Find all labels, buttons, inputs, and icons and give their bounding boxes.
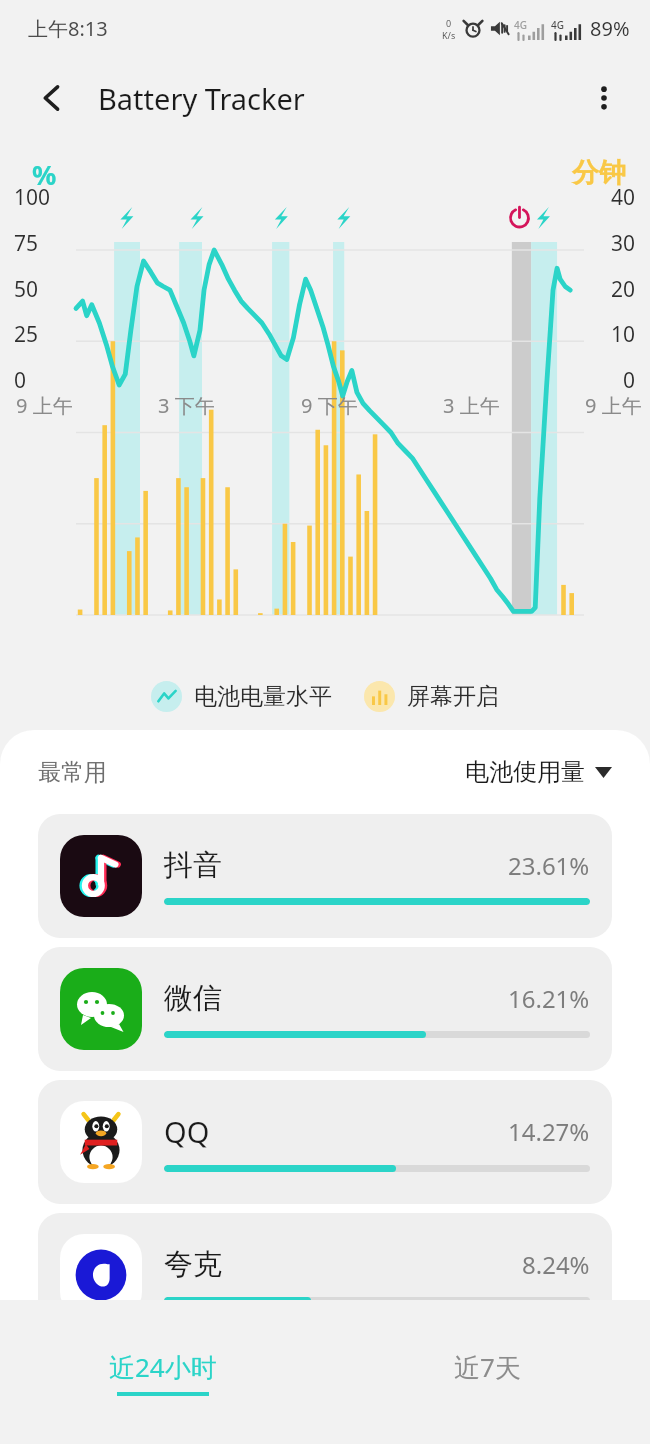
staticText: 3 上午	[443, 392, 500, 419]
staticText: 电池使用量	[465, 757, 585, 787]
staticText: 50	[14, 275, 39, 304]
staticText: 9 上午	[16, 392, 73, 419]
staticText: 89%	[590, 15, 630, 42]
staticText: 25	[14, 320, 39, 349]
button[interactable]: 电池使用量	[465, 757, 612, 787]
button[interactable]: 电池电量水平	[147, 681, 336, 712]
staticText: 4G	[551, 18, 564, 32]
staticText: 电池电量水平	[194, 682, 332, 711]
staticText: 近7天	[454, 1349, 521, 1385]
staticText: 抖音	[164, 847, 222, 884]
staticText: 100	[14, 183, 51, 212]
staticText: 近24小时	[109, 1349, 217, 1385]
staticText: 0	[14, 366, 27, 395]
button[interactable]: 夸克	[38, 1213, 612, 1337]
button[interactable]: Back	[26, 72, 78, 124]
staticText: 9 上午	[585, 392, 642, 419]
staticText: 4G	[514, 18, 527, 32]
staticText: Battery Tracker	[98, 79, 305, 118]
staticText: QQ	[164, 1112, 210, 1151]
button[interactable]: QQ	[38, 1080, 612, 1204]
button[interactable]	[38, 1346, 612, 1444]
staticText: 9 下午	[301, 392, 358, 419]
staticText: 微信	[164, 980, 222, 1017]
button[interactable]: 抖音	[38, 814, 612, 938]
staticText: 分钟	[572, 156, 626, 190]
staticText: 40	[611, 183, 636, 212]
staticText: 30	[611, 229, 636, 258]
button[interactable]: 近7天	[325, 1300, 650, 1444]
staticText: K/s	[442, 29, 456, 41]
button[interactable]: 微信	[38, 947, 612, 1071]
staticText: 0	[623, 366, 636, 395]
staticText: 屏幕开启	[407, 682, 499, 711]
staticText: 20	[611, 275, 636, 304]
staticText: 0	[446, 17, 452, 29]
staticText: 3 下午	[158, 392, 215, 419]
staticText: 14.27%	[508, 1115, 590, 1148]
button[interactable]: 近24小时	[0, 1300, 325, 1444]
staticText: 最常用	[38, 758, 107, 787]
staticText: 75	[14, 229, 39, 258]
staticText: %	[32, 156, 57, 193]
staticText: 上午8:13	[28, 15, 108, 42]
staticText: 10	[611, 320, 636, 349]
staticText: 夸克	[164, 1246, 222, 1283]
staticText: 23.61%	[508, 849, 590, 882]
staticText: 8.24%	[522, 1248, 590, 1281]
staticText: 16.21%	[508, 982, 590, 1015]
button[interactable]: More options	[578, 72, 630, 124]
button[interactable]: 屏幕开启	[360, 681, 503, 712]
